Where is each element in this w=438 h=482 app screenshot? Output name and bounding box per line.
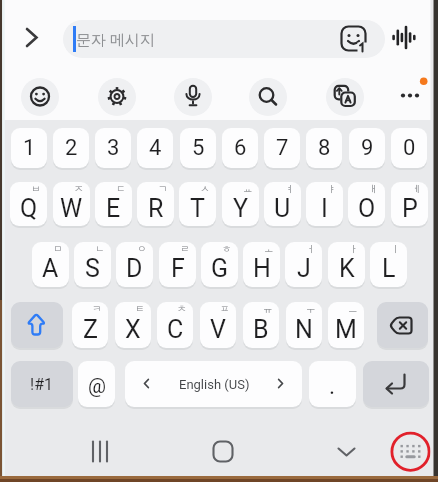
button[interactable] [377, 302, 428, 348]
button[interactable]: B [243, 302, 279, 348]
button[interactable]: O [348, 182, 385, 226]
button[interactable] [11, 361, 73, 407]
button[interactable]: A [32, 242, 69, 287]
staticText: 4 [149, 135, 162, 161]
staticText: 7 [276, 135, 289, 161]
button[interactable]: S [74, 242, 111, 287]
button[interactable] [78, 361, 115, 407]
staticText: A [42, 254, 59, 283]
button[interactable] [174, 78, 212, 116]
button[interactable] [363, 361, 429, 407]
staticText: ㅊ [177, 303, 187, 315]
button[interactable] [21, 78, 59, 116]
button[interactable]: C [157, 302, 193, 348]
staticText: C [167, 315, 184, 344]
button[interactable] [389, 430, 433, 474]
button[interactable] [14, 20, 50, 56]
button[interactable]: 5 [180, 128, 216, 168]
button[interactable]: 6 [222, 128, 258, 168]
button[interactable]: T [179, 182, 216, 226]
staticText: G [211, 254, 229, 283]
button[interactable]: P [391, 182, 428, 226]
button[interactable]: 4 [137, 128, 173, 168]
button[interactable]: 1 [11, 128, 47, 168]
staticText: W [60, 194, 83, 223]
button[interactable]: V [200, 302, 236, 348]
staticText: Y [233, 194, 249, 223]
button[interactable] [63, 20, 385, 58]
staticText: ㅈ [74, 183, 84, 195]
button[interactable]: 9 [349, 128, 385, 168]
staticText: ㅇ [137, 243, 147, 255]
staticText: Z [83, 315, 98, 344]
staticText: S [85, 254, 100, 283]
staticText: ㅁ [53, 243, 63, 255]
staticText: D [126, 254, 143, 283]
staticText: X [125, 315, 141, 344]
button[interactable] [326, 78, 364, 116]
staticText: 8 [318, 135, 331, 161]
button[interactable] [388, 20, 424, 56]
staticText: ㅜ [306, 303, 316, 315]
staticText: ㅗ [264, 243, 274, 255]
staticText: 6 [234, 135, 247, 161]
button[interactable]: 8 [306, 128, 342, 168]
staticText: 5 [192, 135, 205, 161]
staticText: 9 [361, 135, 374, 161]
staticText: ㅌ [135, 303, 145, 315]
button[interactable] [392, 78, 428, 114]
button[interactable] [98, 78, 136, 116]
button[interactable] [125, 361, 302, 407]
button[interactable]: 2 [53, 128, 89, 168]
staticText: I [321, 194, 328, 223]
staticText: T [190, 194, 205, 223]
button[interactable]: K [328, 242, 365, 287]
button[interactable] [309, 361, 356, 407]
staticText: O [358, 194, 376, 223]
button[interactable] [338, 22, 372, 56]
button[interactable] [78, 430, 122, 474]
button[interactable]: M [328, 302, 364, 348]
button[interactable]: U [264, 182, 301, 226]
button[interactable]: R [137, 182, 174, 226]
button[interactable]: H [243, 242, 280, 287]
button[interactable]: L [370, 242, 407, 287]
staticText: ㅕ [285, 183, 295, 195]
button[interactable]: 3 [95, 128, 131, 168]
button[interactable]: Z [72, 302, 108, 348]
staticText: 1 [23, 135, 36, 161]
staticText: H [253, 254, 271, 283]
button[interactable]: Y [222, 182, 259, 226]
button[interactable]: 7 [264, 128, 300, 168]
staticText: ㄷ [116, 183, 126, 195]
staticText: ㅂ [31, 183, 41, 195]
staticText: . [329, 373, 336, 400]
staticText: 0 [403, 135, 416, 161]
button[interactable] [324, 430, 368, 474]
staticText: V [210, 315, 226, 344]
button[interactable] [201, 430, 245, 474]
staticText: E [106, 194, 121, 223]
button[interactable]: N [286, 302, 322, 348]
button[interactable]: X [115, 302, 151, 348]
button[interactable]: G [201, 242, 238, 287]
staticText: @ [88, 374, 106, 397]
staticText: 2 [65, 135, 78, 161]
button[interactable]: J [285, 242, 322, 287]
button[interactable]: I [306, 182, 343, 226]
button[interactable]: Q [10, 182, 47, 226]
button[interactable] [11, 302, 63, 348]
button[interactable]: W [53, 182, 90, 226]
staticText: M [335, 315, 357, 344]
button[interactable] [249, 78, 287, 116]
button[interactable]: F [159, 242, 196, 287]
staticText: ㅔ [412, 183, 422, 195]
staticText: L [382, 254, 396, 283]
staticText: J [297, 254, 311, 283]
button[interactable]: 0 [391, 128, 427, 168]
button[interactable]: D [116, 242, 153, 287]
staticText: ㅎ [222, 243, 232, 255]
staticText: P [402, 194, 418, 223]
button[interactable]: E [95, 182, 132, 226]
staticText: ㅠ [263, 303, 273, 315]
